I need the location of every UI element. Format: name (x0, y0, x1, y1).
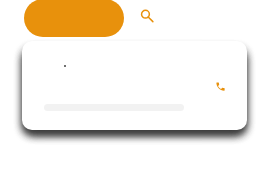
button[interactable]: Search (128, 0, 164, 32)
button[interactable]: Filter chip (24, 0, 124, 37)
button[interactable]: Call (22, 41, 247, 130)
button[interactable]: Call (208, 74, 232, 98)
